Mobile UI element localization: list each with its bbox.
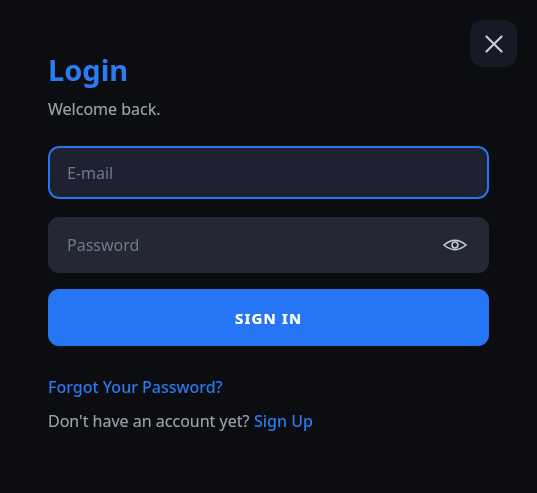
button[interactable]: Password [48, 217, 489, 273]
staticText: E-mail [67, 162, 114, 184]
button[interactable]: Close [470, 20, 517, 67]
staticText: Welcome back. [48, 98, 161, 120]
staticText: Login [48, 50, 129, 89]
staticText: Forgot Your Password? [48, 376, 223, 398]
button[interactable]: E-mail [48, 146, 489, 199]
staticText: Don't have an account yet? [48, 410, 254, 432]
button[interactable]: Forgot Your Password? [48, 376, 223, 398]
button[interactable]: SIGN IN [48, 289, 489, 346]
button[interactable]: Sign Up [254, 410, 313, 432]
button[interactable]: Show password [440, 230, 470, 260]
staticText: Password [67, 234, 140, 256]
staticText: SIGN IN [235, 308, 303, 328]
staticText: Sign Up [254, 410, 313, 432]
